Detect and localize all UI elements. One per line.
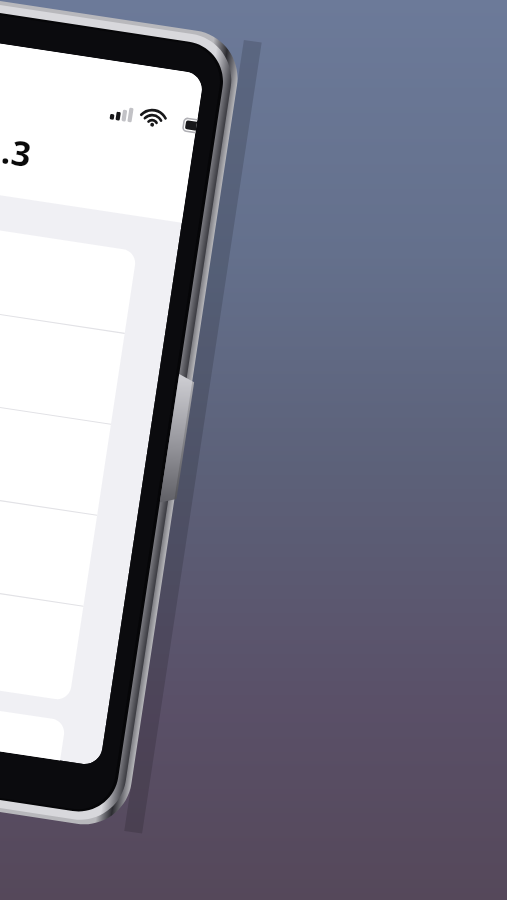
button[interactable]: Next: [0, 0, 120, 46]
